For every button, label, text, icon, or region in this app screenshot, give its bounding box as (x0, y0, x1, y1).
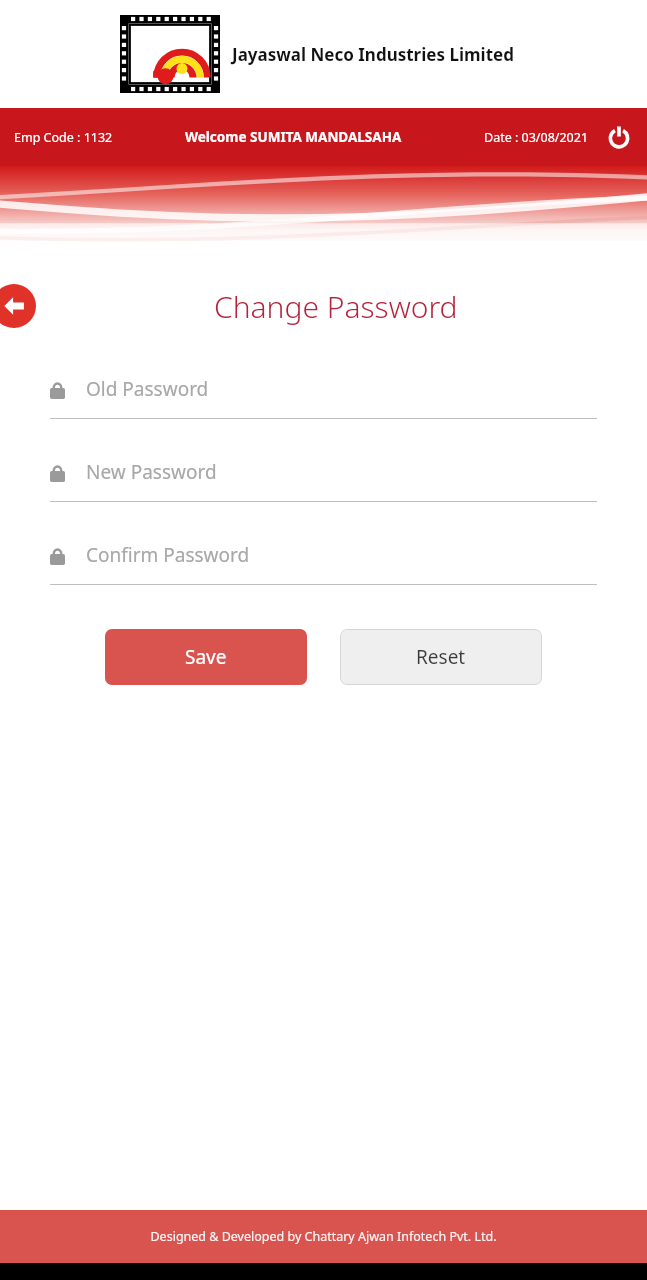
button[interactable]: Save (105, 629, 307, 685)
staticText: Emp Code : 1132 (14, 129, 113, 146)
button[interactable]: New Password (50, 443, 597, 526)
button[interactable]: Reset (340, 629, 542, 685)
staticText: New Password (86, 459, 217, 485)
staticText: Old Password (86, 376, 209, 402)
button[interactable]: Logout (597, 115, 641, 159)
staticText: Designed & Developed by Chattary Ajwan I… (150, 1228, 497, 1245)
button[interactable]: Confirm Password (50, 526, 597, 609)
button[interactable]: Back (0, 284, 36, 328)
staticText: Confirm Password (86, 542, 250, 568)
staticText: Save (185, 644, 227, 670)
staticText: Reset (416, 644, 466, 670)
button[interactable]: Old Password (50, 360, 597, 443)
staticText: Welcome SUMITA MANDALSAHA (185, 128, 402, 146)
staticText: Change Password (214, 286, 458, 327)
staticText: Date : 03/08/2021 (484, 129, 589, 146)
staticText: Jayaswal Neco Industries Limited (232, 43, 514, 66)
